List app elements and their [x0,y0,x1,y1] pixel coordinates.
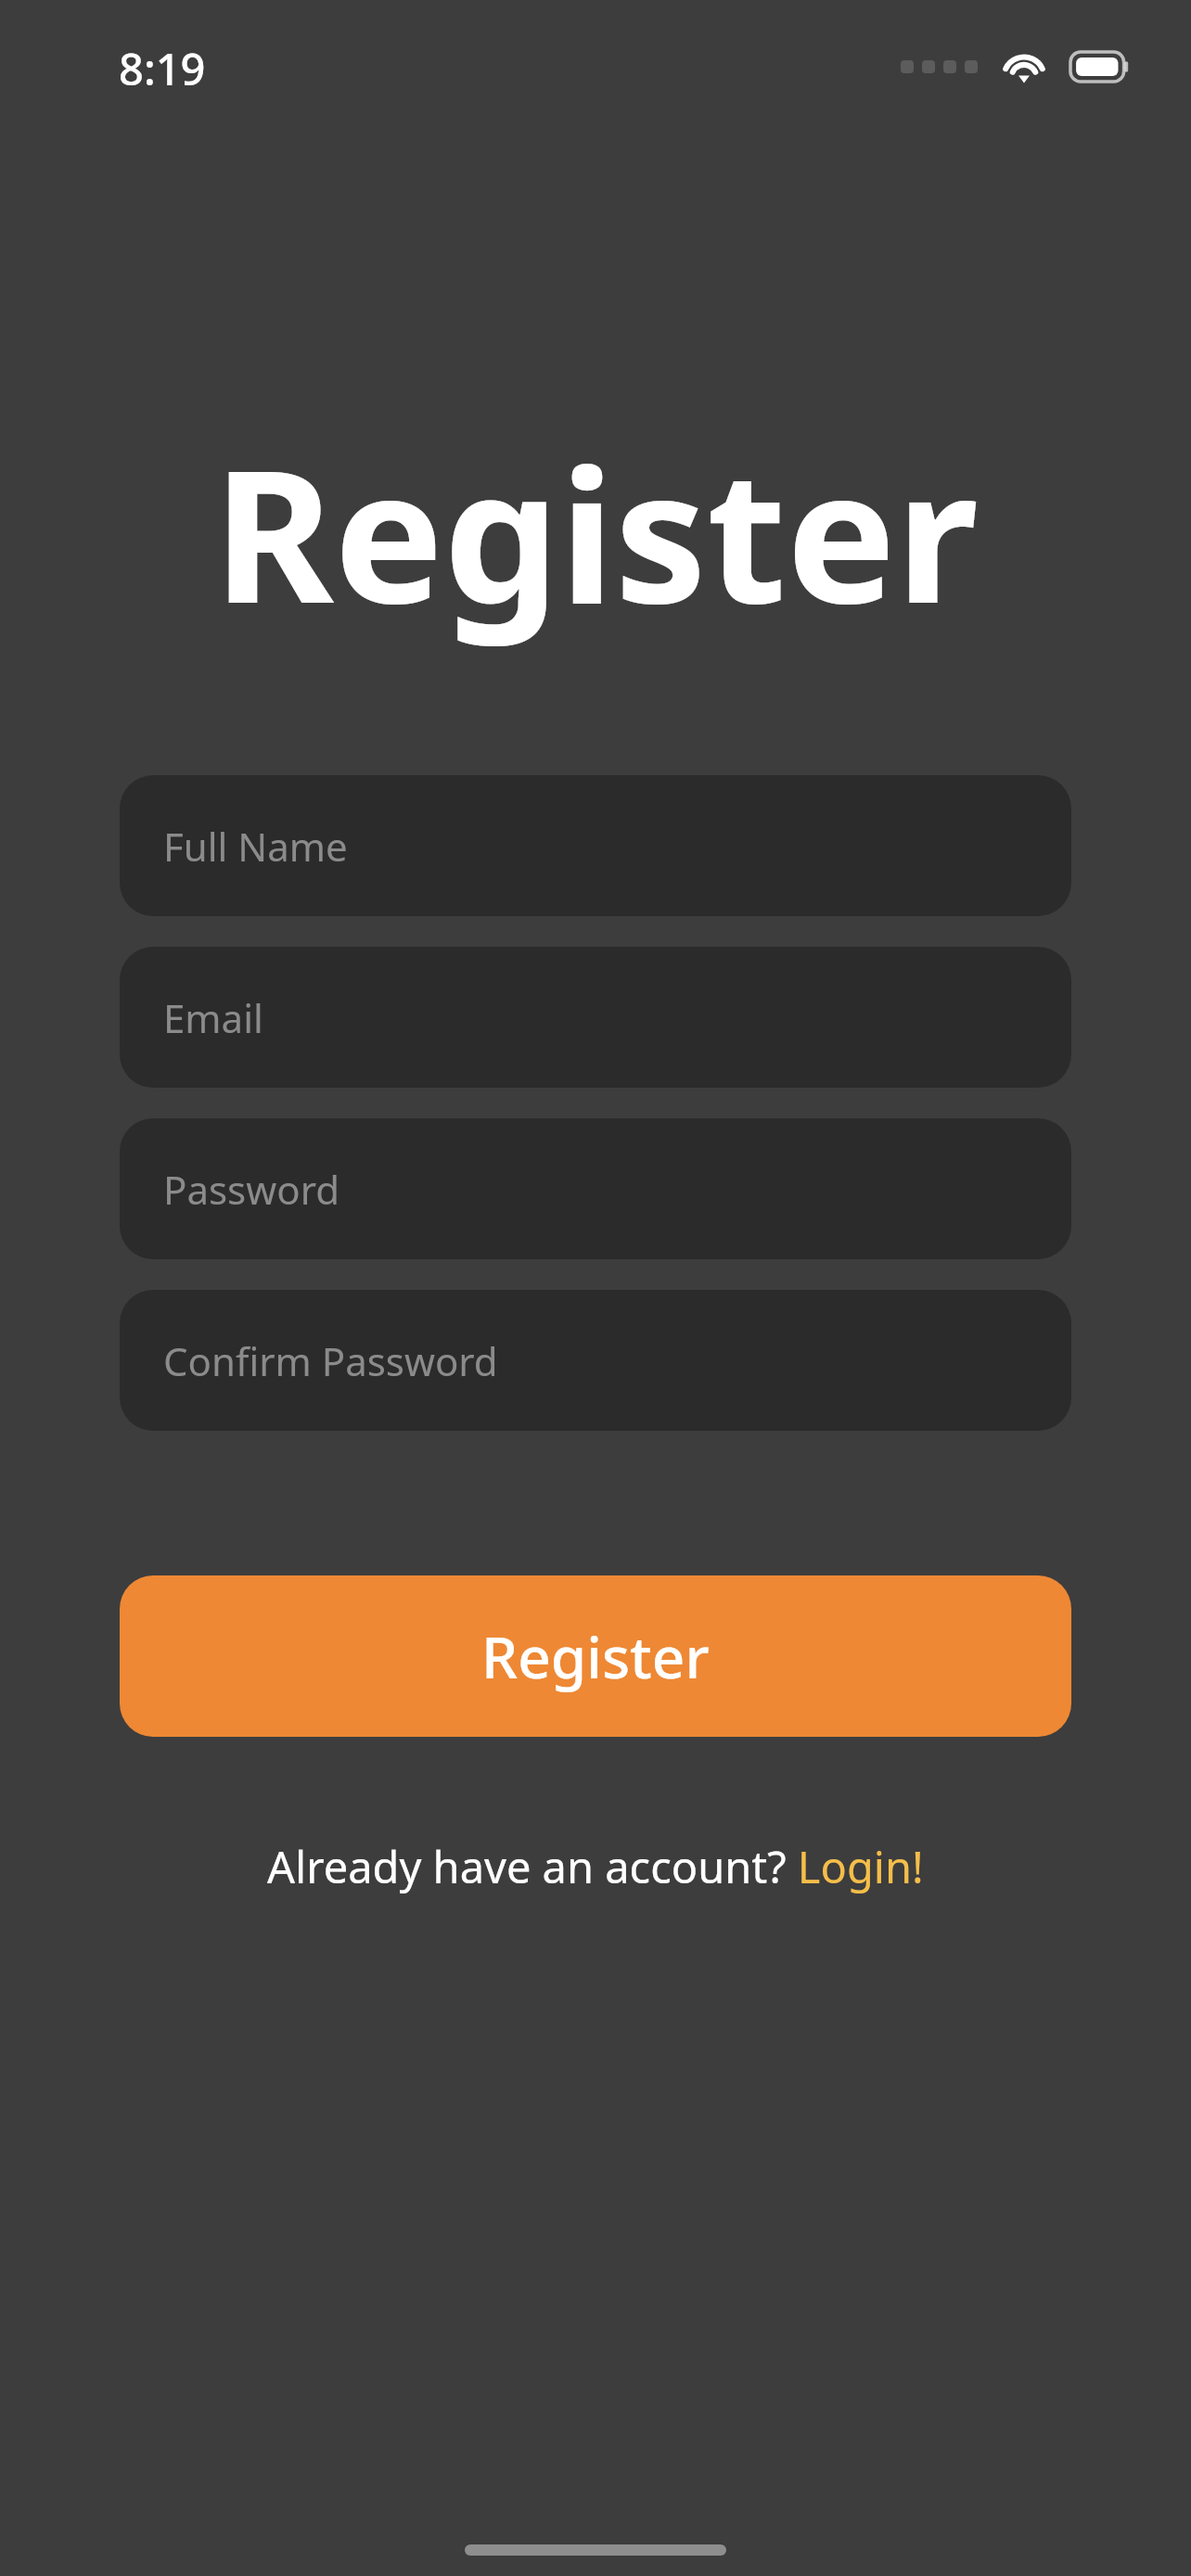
button[interactable]: Email [120,947,1071,1088]
button[interactable]: Password [120,1118,1071,1259]
staticText: 8:19 [119,39,206,98]
other: Battery full [1070,52,1130,82]
button[interactable]: Full Name [120,775,1071,916]
staticText: Register [481,1617,710,1695]
staticText: Confirm Password [163,1334,498,1387]
staticText: Register [213,406,979,657]
staticText: Email [163,991,263,1044]
staticText: Already have an account? Login! [267,1837,924,1896]
other: Wi-Fi [1000,49,1048,84]
staticText: Password [163,1163,339,1216]
button[interactable]: Register [120,1575,1071,1737]
button[interactable]: Already have an account? Login! [120,1837,1071,1896]
button[interactable]: Confirm Password [120,1290,1071,1431]
staticText: Full Name [163,820,348,873]
